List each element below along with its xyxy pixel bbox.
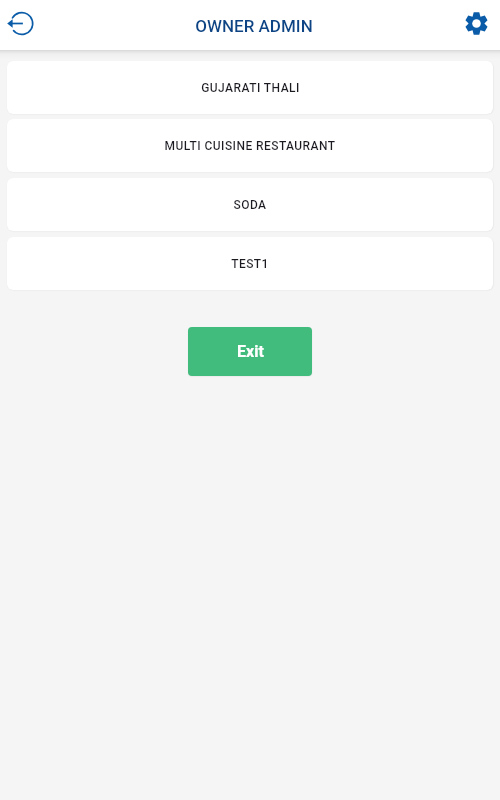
staticText: TEST1 bbox=[231, 257, 269, 271]
button[interactable]: TEST1 bbox=[7, 237, 493, 290]
button[interactable]: Exit bbox=[188, 327, 312, 376]
button[interactable]: Settings bbox=[456, 3, 500, 47]
staticText: GUJARATI THALI bbox=[201, 81, 300, 95]
staticText: OWNER ADMIN bbox=[195, 16, 313, 36]
button[interactable]: Back bbox=[0, 3, 44, 47]
staticText: MULTI CUISINE RESTAURANT bbox=[164, 139, 336, 153]
button[interactable]: MULTI CUISINE RESTAURANT bbox=[7, 119, 493, 172]
staticText: SODA bbox=[233, 198, 267, 212]
button[interactable]: SODA bbox=[7, 178, 493, 231]
button[interactable]: GUJARATI THALI bbox=[7, 61, 493, 114]
staticText: Exit bbox=[237, 342, 264, 361]
